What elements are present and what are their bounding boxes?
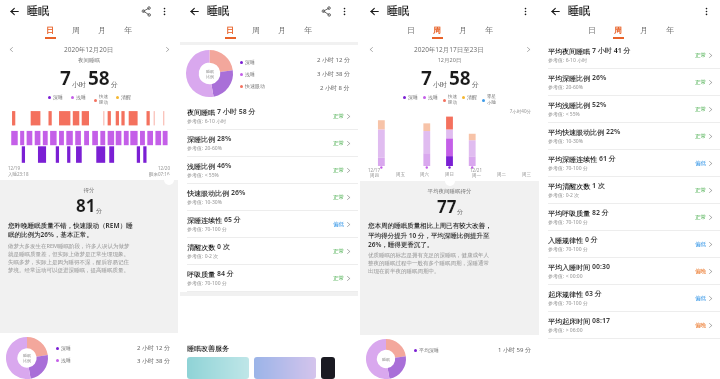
button[interactable]: 周: [243, 22, 269, 42]
button[interactable]: 年: [657, 22, 683, 42]
button[interactable]: 呼吸质量: [180, 265, 358, 292]
staticText: 平均快速眼动比例: [548, 128, 604, 137]
button[interactable]: Back: [186, 3, 202, 19]
staticText: 周日: [445, 172, 454, 178]
button[interactable]: More options: [336, 3, 352, 19]
staticText: 周: [614, 25, 622, 35]
button[interactable]: 周: [605, 22, 631, 42]
staticText: 7: [60, 65, 71, 91]
staticText: 浅睡: [245, 71, 255, 77]
staticText: 偏低: [695, 295, 706, 302]
button[interactable]: 月: [450, 22, 476, 42]
button[interactable]: Next: [162, 44, 172, 54]
staticText: 12月20日: [360, 56, 539, 64]
staticText: 月: [640, 25, 648, 35]
staticText: 参考值: 10-30%: [187, 199, 222, 206]
staticText: 日: [588, 25, 596, 35]
staticText: 0 分: [585, 235, 598, 245]
button[interactable]: 平均深睡连续性: [541, 150, 720, 177]
button[interactable]: 日: [398, 22, 424, 42]
staticText: 周: [433, 25, 441, 35]
staticText: 3 小时 38 分: [137, 357, 170, 365]
button[interactable]: 起床规律性: [541, 285, 720, 312]
staticText: 正常: [333, 194, 344, 201]
staticText: 眼动: [99, 100, 108, 106]
button[interactable]: [187, 357, 249, 379]
button[interactable]: 日: [579, 22, 605, 42]
button[interactable]: More options: [517, 3, 533, 19]
button[interactable]: 平均入睡时间: [541, 258, 720, 285]
button[interactable]: Back: [6, 3, 22, 19]
staticText: 清醒: [467, 94, 477, 100]
button[interactable]: 平均夜间睡眠: [541, 42, 720, 69]
button[interactable]: 快速眼动比例: [180, 184, 358, 211]
button[interactable]: 入睡规律性: [541, 231, 720, 258]
button[interactable]: 平均清醒次数: [541, 177, 720, 204]
staticText: 2 小时 12 分: [137, 344, 170, 352]
staticText: 日: [46, 25, 54, 35]
button[interactable]: 日: [217, 22, 243, 42]
staticText: 年: [666, 25, 674, 35]
staticText: 月: [278, 25, 286, 35]
staticText: 分: [457, 208, 463, 216]
button[interactable]: More options: [698, 3, 714, 19]
button[interactable]: Next: [523, 44, 533, 54]
button[interactable]: Share: [318, 3, 334, 19]
staticText: 清醒: [121, 94, 131, 100]
staticText: 84 分: [217, 269, 234, 279]
staticText: 1 次: [592, 181, 605, 191]
button[interactable]: 年: [476, 22, 502, 42]
button[interactable]: 月: [89, 22, 115, 42]
staticText: 深睡: [408, 94, 418, 100]
button[interactable]: 周: [63, 22, 89, 42]
staticText: 深睡连续性: [187, 216, 222, 225]
staticText: 优质睡眠的标志是拥有充足的深睡眠，健康成年人 整夜的睡眠过程中一般有多个睡眠周期…: [368, 252, 489, 275]
staticText: 得分: [0, 187, 178, 194]
staticText: 偏低: [695, 241, 706, 248]
button[interactable]: Previous: [366, 44, 376, 54]
staticText: 睡眠: [27, 4, 49, 18]
button[interactable]: 月: [631, 22, 657, 42]
button[interactable]: 平均浅睡比例: [541, 96, 720, 123]
button[interactable]: 月: [269, 22, 295, 42]
button[interactable]: 年: [295, 22, 321, 42]
staticText: 睡眠 比例: [206, 69, 214, 79]
button[interactable]: 深睡比例: [180, 130, 358, 157]
staticText: 参考值: 0-2 次: [548, 192, 580, 199]
staticText: 参考值: 70-100 分: [187, 280, 227, 287]
button[interactable]: Previous: [6, 44, 16, 54]
button[interactable]: 夜间睡眠: [180, 103, 358, 130]
button[interactable]: Back: [366, 3, 382, 19]
staticText: 7: [421, 65, 432, 91]
staticText: 参考值: < 55%: [548, 111, 580, 118]
staticText: 65 分: [224, 215, 241, 225]
button[interactable]: 平均呼吸质量: [541, 204, 720, 231]
button[interactable]: 浅睡比例: [180, 157, 358, 184]
button[interactable]: 日: [37, 22, 63, 42]
staticText: 7 小时 58 分: [217, 107, 256, 117]
button[interactable]: 平均起床时间: [541, 312, 720, 339]
staticText: 年: [485, 25, 493, 35]
staticText: 58: [88, 65, 110, 91]
button[interactable]: [254, 357, 316, 379]
button[interactable]: More options: [156, 3, 172, 19]
staticText: 12/20: [158, 165, 170, 171]
button[interactable]: 周: [424, 22, 450, 42]
staticText: 睡眠: [387, 4, 409, 18]
button[interactable]: Share: [138, 3, 154, 19]
staticText: 平均夜间睡眠: [548, 47, 590, 56]
staticText: 呼吸质量: [187, 270, 215, 279]
button[interactable]: 清醒次数: [180, 238, 358, 265]
staticText: 周六: [420, 172, 429, 178]
button[interactable]: 平均快速眼动比例: [541, 123, 720, 150]
button[interactable]: Back: [547, 3, 563, 19]
staticText: 参考值: < 00:00: [548, 273, 583, 280]
staticText: 快速眼动比例: [187, 189, 229, 198]
staticText: 周四: [370, 173, 379, 179]
button[interactable]: [321, 357, 335, 379]
staticText: 2 小时 12 分: [317, 56, 350, 64]
staticText: 平均夜间睡眠得分: [360, 188, 539, 195]
button[interactable]: 平均深睡比例: [541, 69, 720, 96]
button[interactable]: 年: [115, 22, 141, 42]
button[interactable]: 深睡连续性: [180, 211, 358, 238]
